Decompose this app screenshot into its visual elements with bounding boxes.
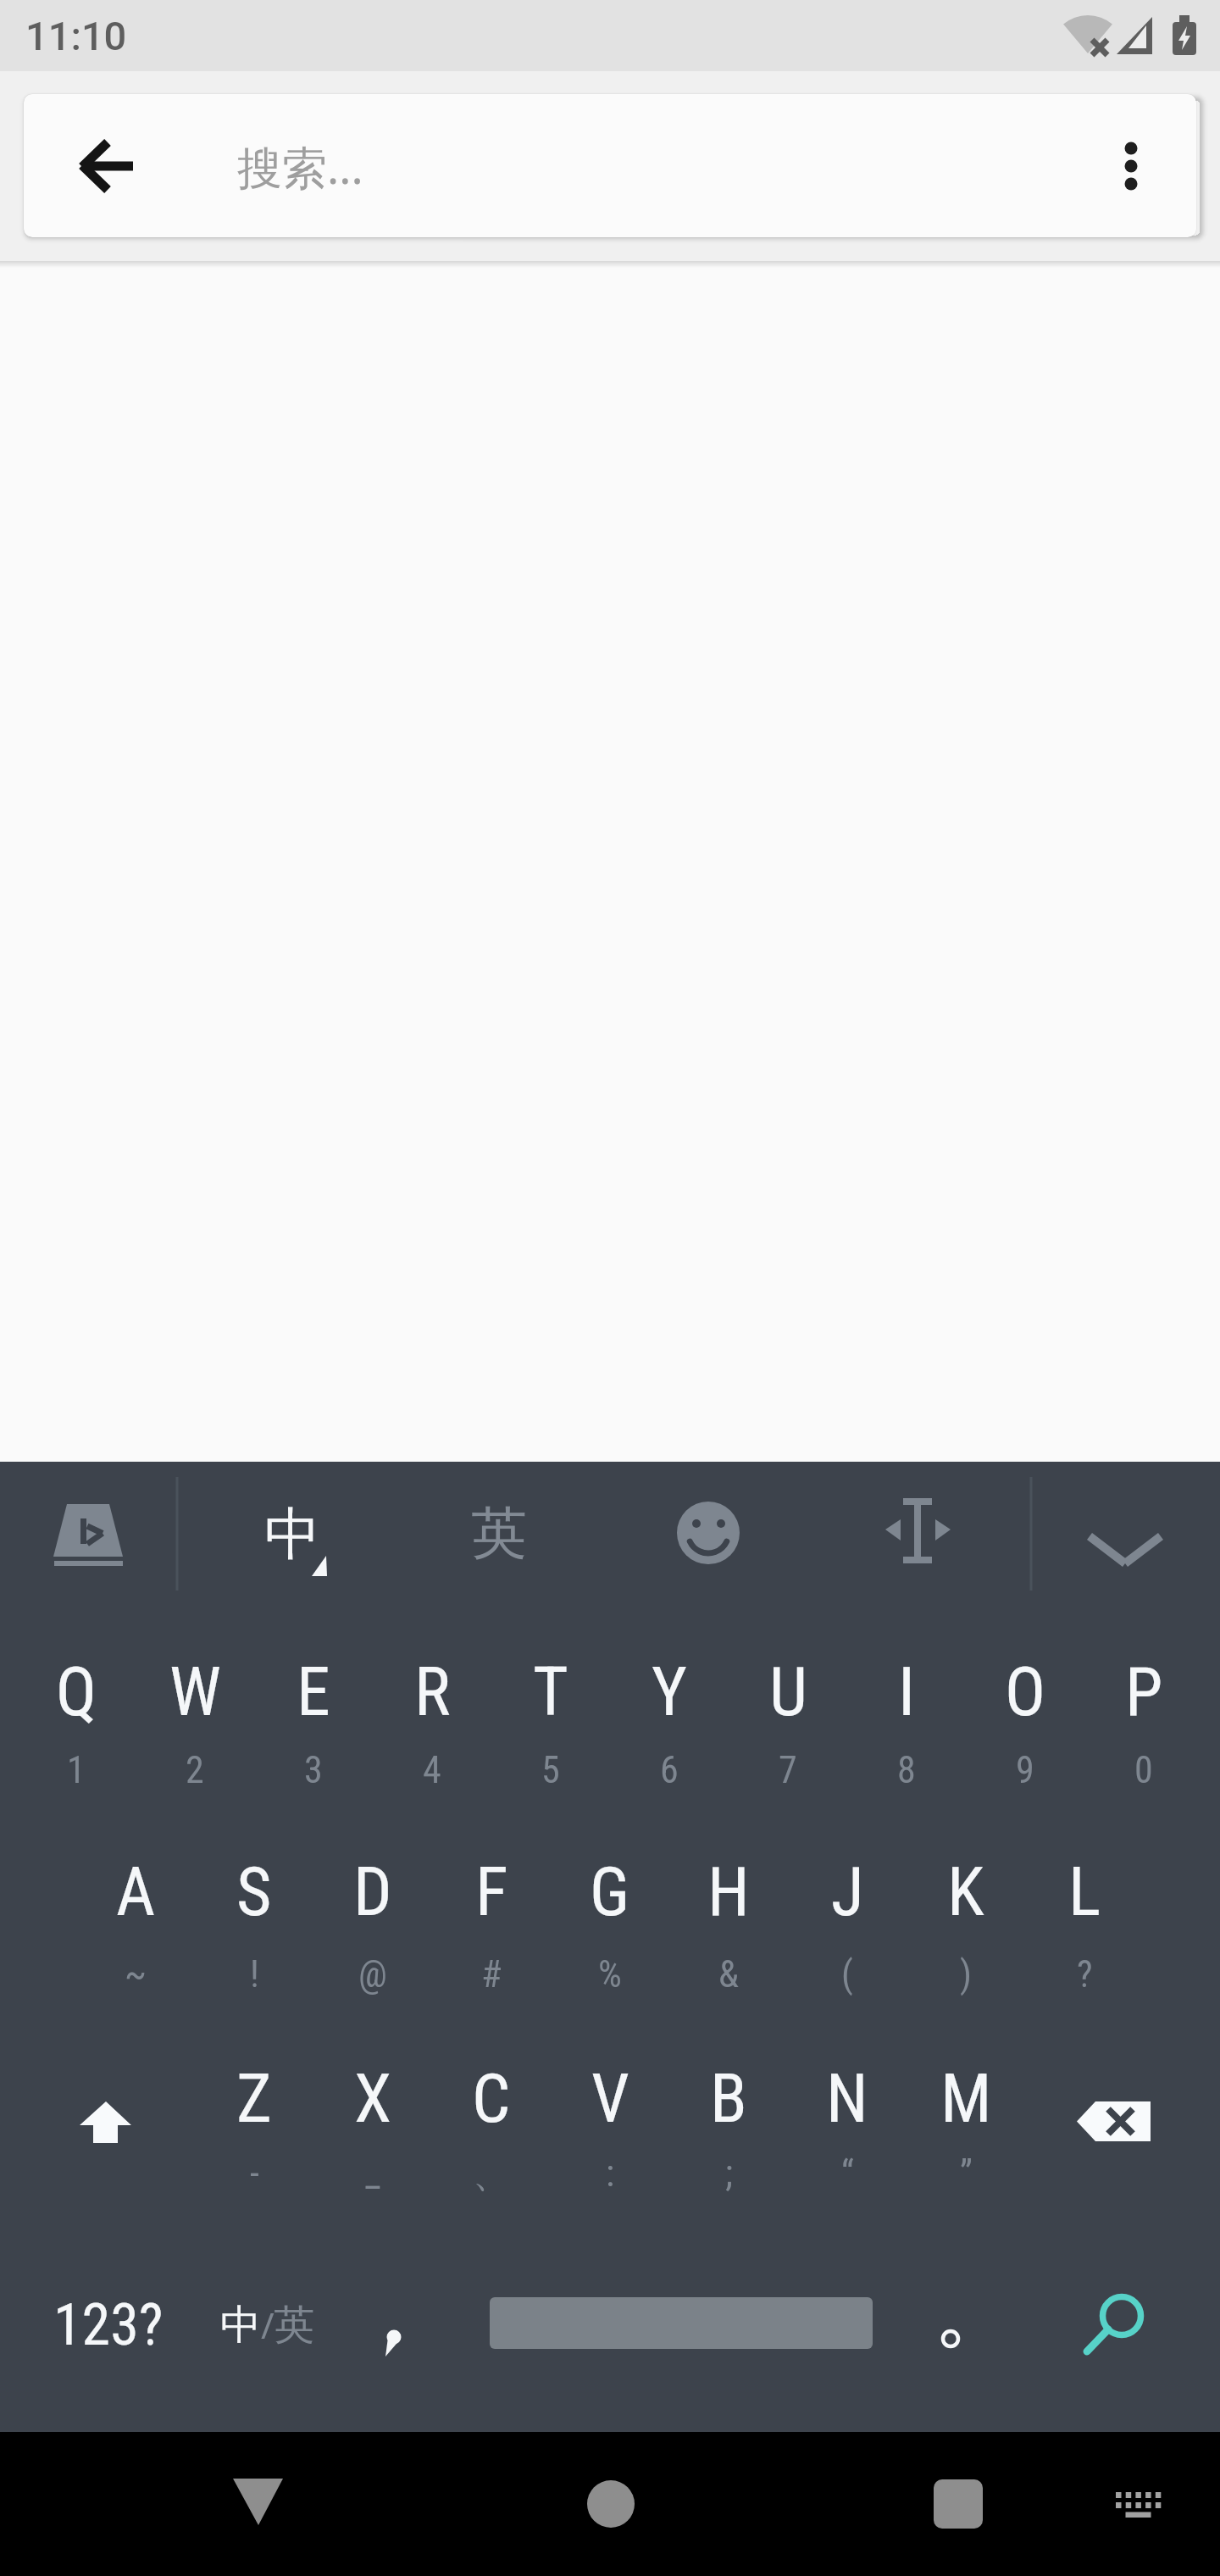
button[interactable]: D [313, 1809, 432, 2017]
button[interactable] [38, 1487, 140, 1580]
button[interactable]: R [373, 1602, 491, 1809]
staticText: M [940, 2059, 992, 2139]
button[interactable]: H [669, 1809, 788, 2017]
button[interactable] [334, 2266, 452, 2384]
staticText: 5 [541, 1748, 560, 1792]
button[interactable]: G [551, 1809, 669, 2017]
button[interactable] [1074, 1482, 1176, 1584]
button[interactable]: F [432, 1809, 551, 2017]
button[interactable] [490, 2297, 873, 2349]
staticText: - [250, 2151, 259, 2196]
staticText: @ [358, 1952, 387, 1996]
button[interactable]: Y [610, 1602, 729, 1809]
staticText: % [598, 1952, 622, 1996]
button[interactable] [891, 2266, 1010, 2384]
staticText: P [1125, 1652, 1163, 1732]
staticText: ! [250, 1952, 259, 1996]
button[interactable]: K [907, 1809, 1025, 2017]
staticText: R [414, 1652, 451, 1732]
staticText: E [297, 1652, 330, 1732]
staticText: ( [841, 1952, 853, 1996]
button[interactable]: B [669, 2017, 788, 2224]
staticText: W [169, 1652, 221, 1732]
staticText: 4 [423, 1748, 441, 1792]
staticText: S [236, 1852, 272, 1932]
button[interactable] [1087, 2453, 1189, 2555]
staticText: 123? [53, 2291, 164, 2359]
button[interactable]: A [76, 1809, 195, 2017]
button[interactable] [59, 118, 154, 213]
staticText: Y [652, 1652, 687, 1732]
staticText: F [475, 1852, 508, 1932]
button[interactable]: L [1025, 1809, 1144, 2017]
staticText: Q [56, 1652, 97, 1732]
staticText: I [898, 1652, 915, 1732]
button[interactable] [867, 1482, 968, 1584]
staticText: T [533, 1652, 568, 1732]
button[interactable] [1056, 2261, 1188, 2393]
staticText: ) [960, 1952, 973, 1996]
staticText: J [831, 1852, 864, 1932]
staticText: 搜索... [237, 136, 363, 197]
staticText: X [354, 2059, 392, 2139]
staticText: C [472, 2059, 511, 2139]
staticText: 中 [264, 1499, 320, 1569]
button[interactable] [657, 1482, 759, 1584]
staticText: G [590, 1852, 630, 1932]
staticText: 9 [1016, 1748, 1034, 1792]
button[interactable]: T [491, 1602, 610, 1809]
button[interactable]: 123? [19, 2266, 198, 2384]
button[interactable] [208, 2453, 309, 2555]
button[interactable]: U [729, 1602, 847, 1809]
button[interactable]: W [136, 1602, 254, 1809]
button[interactable]: V [551, 2017, 669, 2224]
staticText: & [718, 1952, 739, 1996]
button[interactable] [560, 2453, 662, 2555]
button[interactable]: M [907, 2017, 1025, 2224]
button[interactable]: 中/英 [191, 2266, 344, 2384]
staticText: 8 [897, 1748, 916, 1792]
button[interactable]: N [788, 2017, 907, 2224]
staticText: 3 [304, 1748, 323, 1792]
staticText: D [353, 1852, 392, 1932]
button[interactable] [1042, 2017, 1186, 2224]
button[interactable]: P [1084, 1602, 1203, 1809]
staticText: ; [725, 2151, 733, 2196]
staticText: # [481, 1952, 502, 1996]
staticText: K [947, 1852, 984, 1932]
staticText: U [769, 1652, 807, 1732]
staticText: L [1068, 1852, 1101, 1932]
staticText: ? [1077, 1952, 1093, 1996]
staticText: ~ [125, 1952, 147, 1996]
staticText: 、 [473, 2151, 510, 2197]
button[interactable]: Q [17, 1602, 136, 1809]
button[interactable]: I [847, 1602, 966, 1809]
staticText: 11:10 [25, 13, 127, 59]
button[interactable]: Z [195, 2017, 313, 2224]
button[interactable] [34, 2017, 178, 2224]
button[interactable]: S [195, 1809, 313, 2017]
button[interactable] [907, 2453, 1009, 2555]
button[interactable]: E [254, 1602, 373, 1809]
staticText: _ [365, 2151, 380, 2196]
button[interactable]: O [966, 1602, 1084, 1809]
button[interactable]: C [432, 2017, 551, 2224]
staticText: 2 [186, 1748, 204, 1792]
button[interactable]: X [313, 2017, 432, 2224]
staticText: H [707, 1852, 750, 1932]
button[interactable]: J [788, 1809, 907, 2017]
staticText: 7 [779, 1748, 797, 1792]
button[interactable] [1087, 118, 1175, 213]
button[interactable]: 中 [241, 1485, 343, 1583]
staticText: 中/英 [220, 2300, 315, 2351]
staticText: B [710, 2059, 747, 2139]
staticText: V [591, 2059, 629, 2139]
staticText: O [1005, 1652, 1046, 1732]
button[interactable]: 英 [444, 1485, 554, 1582]
staticText: 6 [660, 1748, 679, 1792]
staticText: 英 [471, 1498, 527, 1568]
staticText: 1 [67, 1748, 86, 1792]
staticText: : [606, 2151, 615, 2196]
staticText: “ [841, 2151, 854, 2196]
staticText: Z [236, 2059, 272, 2139]
